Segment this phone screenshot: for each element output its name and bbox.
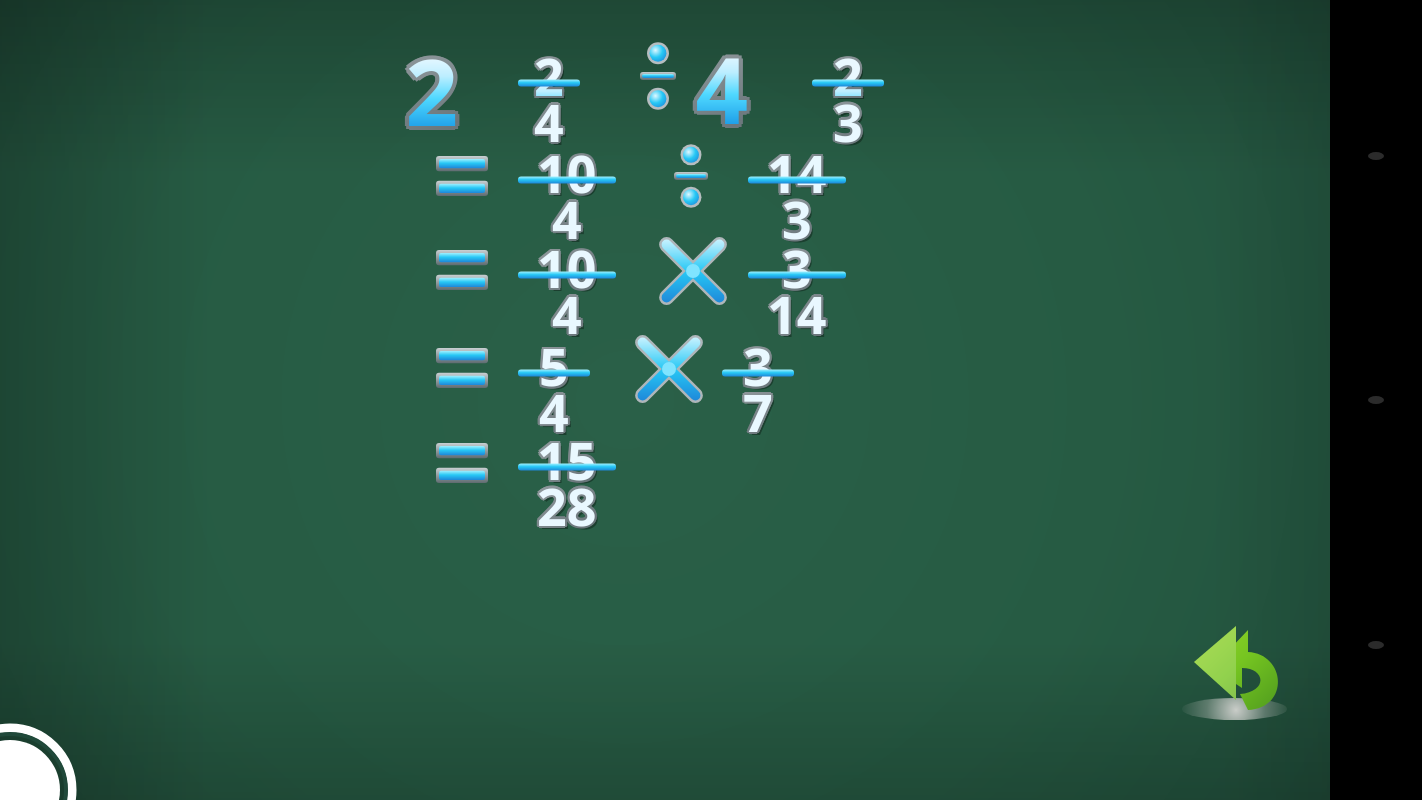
button[interactable]: Back: [1190, 612, 1300, 724]
